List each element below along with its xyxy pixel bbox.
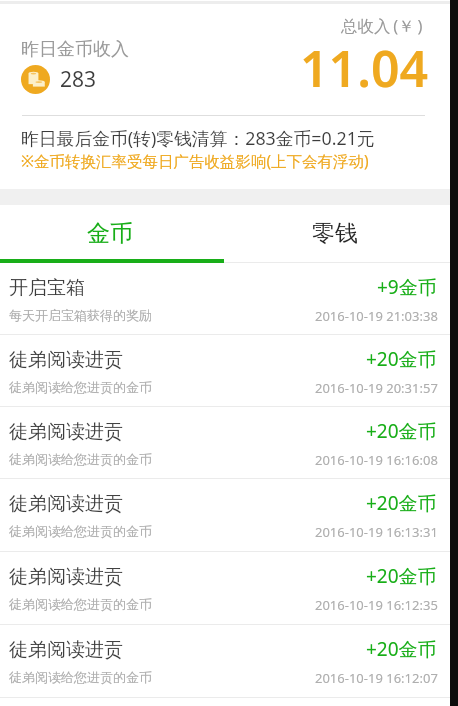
staticText: 2016-10-19 16:12:35: [315, 596, 438, 614]
staticText: +20金币: [366, 418, 437, 444]
button[interactable]: 零钱: [225, 205, 450, 263]
button[interactable]: 徒弟阅读进贡: [0, 335, 450, 407]
staticText: 徒弟阅读进贡: [9, 420, 123, 444]
button[interactable]: 徒弟阅读进贡: [0, 552, 450, 625]
staticText: 开启宝箱: [9, 276, 85, 300]
staticText: 每天开启宝箱获得的奖励: [9, 307, 152, 323]
staticText: 2016-10-19 16:16:08: [315, 451, 438, 469]
other: Gold coins: [21, 65, 50, 94]
button[interactable]: 金币: [0, 205, 225, 263]
staticText: +20金币: [366, 563, 437, 589]
staticText: 徒弟阅读进贡: [9, 348, 123, 372]
staticText: 徒弟阅读给您进贡的金币: [9, 379, 152, 395]
staticText: 总收入 (￥ ): [341, 14, 423, 37]
staticText: 2016-10-19 21:03:38: [315, 307, 438, 325]
staticText: 11.04: [300, 34, 429, 102]
staticText: ※金币转换汇率受每日广告收益影响(上下会有浮动): [21, 150, 369, 171]
button[interactable]: 开启宝箱: [0, 263, 450, 335]
staticText: 徒弟阅读进贡: [9, 492, 123, 516]
staticText: 昨日金币收入: [21, 38, 129, 61]
staticText: 徒弟阅读给您进贡的金币: [9, 669, 152, 685]
staticText: +20金币: [366, 346, 437, 372]
button[interactable]: 徒弟阅读进贡: [0, 625, 450, 698]
staticText: 徒弟阅读给您进贡的金币: [9, 451, 152, 467]
staticText: 2016-10-19 16:13:31: [315, 523, 438, 541]
button[interactable]: 徒弟阅读进贡: [0, 407, 450, 479]
staticText: +20金币: [366, 636, 437, 662]
staticText: 283: [60, 65, 97, 94]
staticText: 徒弟阅读进贡: [9, 565, 123, 589]
staticText: 昨日最后金币(转)零钱清算：283金币=0.21元: [21, 126, 375, 150]
staticText: 2016-10-19 16:12:07: [315, 669, 438, 687]
staticText: +9金币: [377, 274, 437, 300]
staticText: +20金币: [366, 490, 437, 516]
button[interactable]: 徒弟阅读进贡: [0, 479, 450, 552]
staticText: 金币: [87, 219, 133, 248]
staticText: 零钱: [312, 219, 358, 248]
staticText: 2016-10-19 20:31:57: [315, 379, 438, 397]
staticText: 徒弟阅读给您进贡的金币: [9, 596, 152, 612]
staticText: 徒弟阅读给您进贡的金币: [9, 523, 152, 539]
staticText: 徒弟阅读进贡: [9, 638, 123, 662]
